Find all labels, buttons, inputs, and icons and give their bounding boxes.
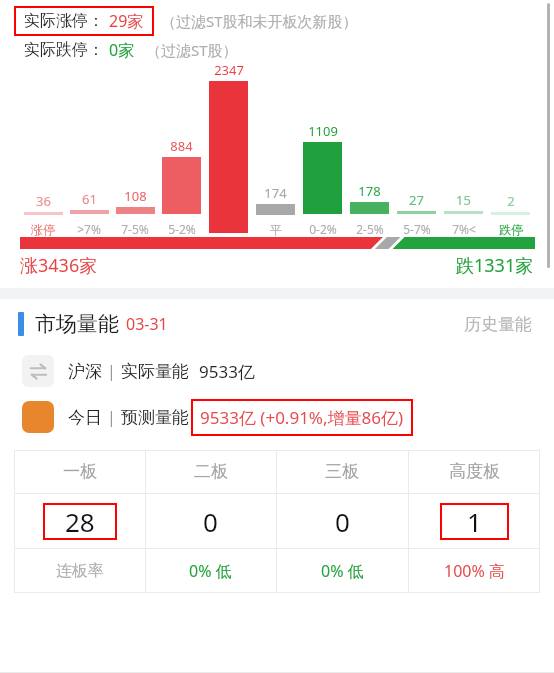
- staticText: 7-5%: [121, 221, 149, 237]
- staticText: 03-31: [126, 313, 168, 335]
- staticText: 0% 低: [321, 560, 364, 582]
- staticText: 9533亿 (+0.91%,增量86亿): [200, 406, 404, 429]
- staticText: 2-5%: [356, 221, 384, 237]
- staticText: 36: [36, 192, 51, 210]
- button[interactable]: 一板: [14, 450, 145, 493]
- staticText: 今日: [68, 407, 102, 428]
- staticText: 实际涨停：: [24, 11, 104, 31]
- staticText: 7%<: [452, 221, 476, 237]
- staticText: 29家: [109, 10, 144, 32]
- staticText: 跌1331家: [456, 253, 534, 278]
- staticText: 5-2%: [168, 221, 196, 237]
- staticText: 涨停: [31, 222, 55, 237]
- button[interactable]: 三板: [276, 450, 408, 493]
- staticText: 0% 低: [189, 560, 232, 582]
- staticText: 100% 高: [444, 560, 505, 582]
- staticText: 2347: [214, 61, 244, 79]
- staticText: 二板: [194, 461, 228, 482]
- staticText: 平: [270, 222, 282, 237]
- staticText: 5-7%: [403, 221, 431, 237]
- staticText: 历史量能: [464, 314, 532, 335]
- staticText: 1: [467, 504, 482, 539]
- button[interactable]: 历史量能: [460, 310, 536, 339]
- staticText: 市场量能: [35, 311, 119, 337]
- staticText: 1109: [308, 122, 338, 140]
- staticText: 0家: [109, 39, 135, 61]
- staticText: >7%: [77, 221, 101, 237]
- staticText: 一板: [63, 461, 97, 482]
- staticText: 三板: [325, 461, 359, 482]
- staticText: 108: [124, 187, 147, 205]
- staticText: 跌停: [499, 222, 523, 237]
- staticText: 连板率: [56, 561, 104, 581]
- staticText: （过滤ST股）: [146, 40, 238, 60]
- staticText: 9533亿: [199, 360, 255, 383]
- staticText: 884: [170, 137, 193, 155]
- staticText: 2: [507, 192, 515, 210]
- staticText: 15: [456, 191, 471, 209]
- staticText: 0-2%: [309, 221, 337, 237]
- staticText: |: [107, 360, 116, 382]
- staticText: 61: [82, 190, 97, 208]
- staticText: 178: [358, 182, 381, 200]
- staticText: 0: [335, 504, 350, 539]
- staticText: 沪深: [68, 361, 102, 382]
- staticText: 27: [409, 191, 424, 209]
- staticText: 实际跌停：: [24, 40, 104, 60]
- staticText: 0: [203, 504, 218, 539]
- staticText: |: [107, 406, 116, 428]
- staticText: 174: [264, 184, 287, 202]
- button[interactable]: 高度板: [408, 450, 540, 493]
- other: 预测量能: [22, 401, 54, 433]
- staticText: 涨3436家: [20, 253, 98, 278]
- staticText: 预测量能: [121, 407, 189, 428]
- staticText: 28: [65, 504, 95, 539]
- other: 实际量能: [22, 355, 54, 387]
- staticText: （过滤ST股和未开板次新股）: [161, 11, 358, 31]
- staticText: 高度板: [449, 461, 500, 482]
- staticText: 实际量能: [121, 361, 189, 382]
- button[interactable]: 二板: [145, 450, 276, 493]
